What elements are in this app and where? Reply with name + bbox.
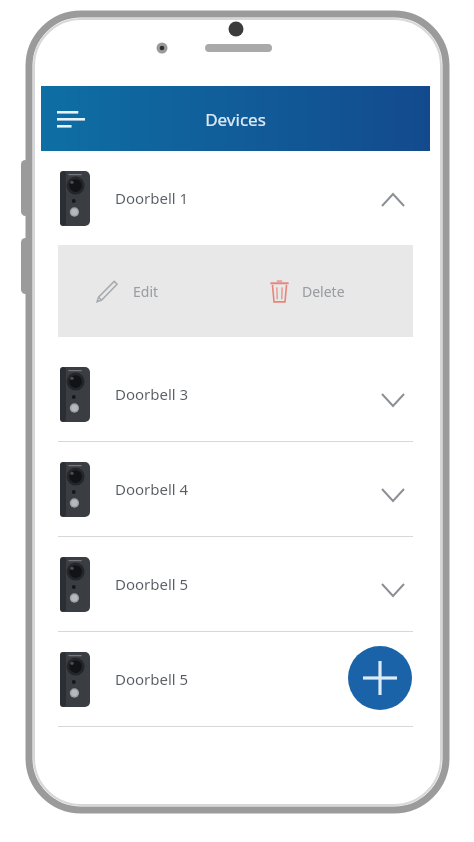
button[interactable]: Open navigation menu <box>49 97 93 141</box>
button[interactable]: Add device <box>348 646 412 710</box>
button[interactable]: Doorbell 3 <box>41 347 430 441</box>
button[interactable]: Doorbell 5 <box>41 537 430 631</box>
staticText: Doorbell 3 <box>115 384 189 404</box>
staticText: Edit <box>133 282 159 301</box>
button[interactable]: Delete <box>270 263 345 319</box>
button[interactable]: Doorbell 5 <box>41 632 430 726</box>
staticText: Doorbell 5 <box>115 574 189 594</box>
button[interactable]: Doorbell 1 <box>41 151 430 245</box>
staticText: Devices <box>205 108 266 131</box>
staticText: Doorbell 4 <box>115 479 189 499</box>
button[interactable]: Edit <box>94 263 159 319</box>
button[interactable]: Doorbell 4 <box>41 442 430 536</box>
staticText: Doorbell 5 <box>115 669 189 689</box>
staticText: Delete <box>302 282 345 301</box>
staticText: Doorbell 1 <box>115 188 189 208</box>
